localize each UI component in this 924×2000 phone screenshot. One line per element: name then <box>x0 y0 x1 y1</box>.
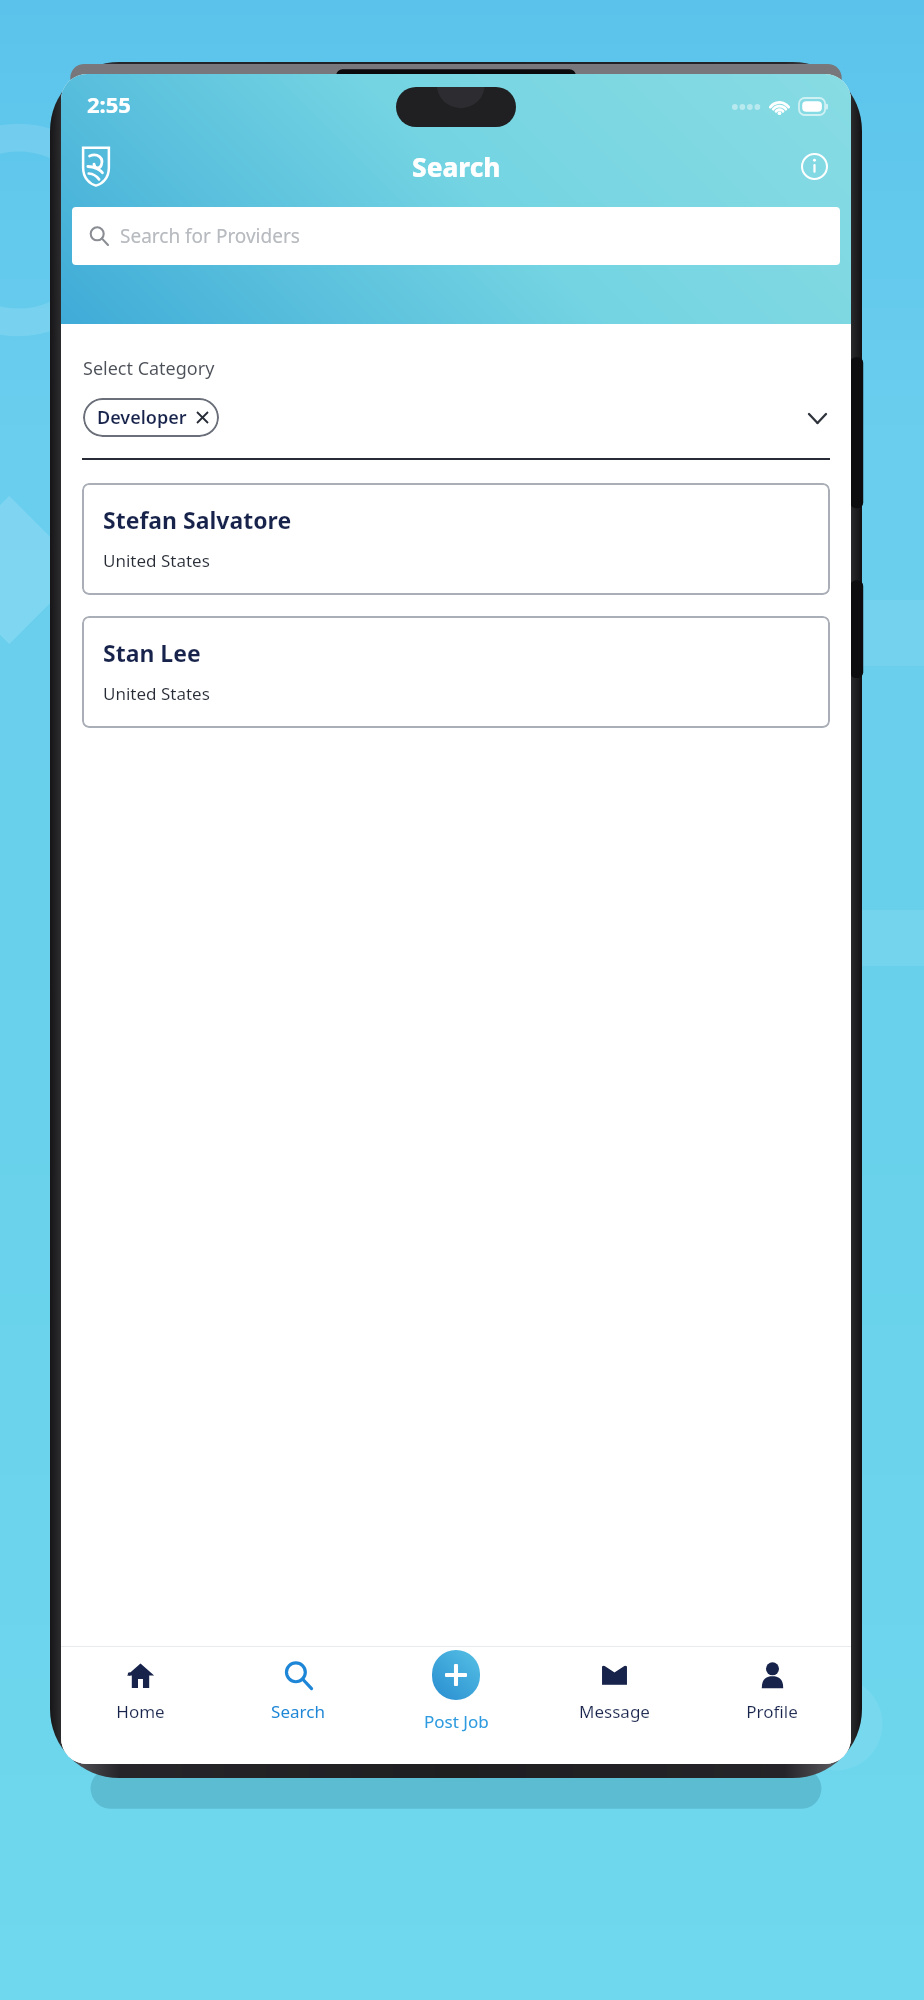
staticText: Developer <box>97 405 187 430</box>
button[interactable]: Developer <box>83 398 219 437</box>
button[interactable]: App logo <box>71 141 121 191</box>
button[interactable]: Expand categories <box>799 400 835 436</box>
staticText: United States <box>103 682 210 705</box>
staticText: Search for Providers <box>120 223 300 249</box>
button[interactable]: Post Job <box>377 1656 535 1746</box>
staticText: Search <box>412 149 501 184</box>
button[interactable]: Search <box>219 1656 377 1746</box>
button[interactable]: Profile <box>693 1656 851 1746</box>
staticText: Search <box>271 1700 325 1723</box>
staticText: Home <box>116 1700 165 1723</box>
staticText: Message <box>579 1700 650 1723</box>
button[interactable]: Information <box>790 142 838 190</box>
staticText: United States <box>103 549 210 572</box>
button[interactable]: Search for Providers <box>72 207 840 265</box>
staticText: Profile <box>746 1700 798 1723</box>
staticText: Stan Lee <box>103 637 201 668</box>
staticText: Stefan Salvatore <box>103 504 292 535</box>
staticText: Post Job <box>424 1710 489 1733</box>
button[interactable]: Home <box>61 1656 219 1746</box>
staticText: Select Category <box>83 356 215 381</box>
button[interactable]: Message <box>535 1656 693 1746</box>
button[interactable]: Stefan Salvatore <box>82 483 830 595</box>
staticText: 2:55 <box>87 89 131 119</box>
button[interactable]: Stan Lee <box>82 616 830 728</box>
